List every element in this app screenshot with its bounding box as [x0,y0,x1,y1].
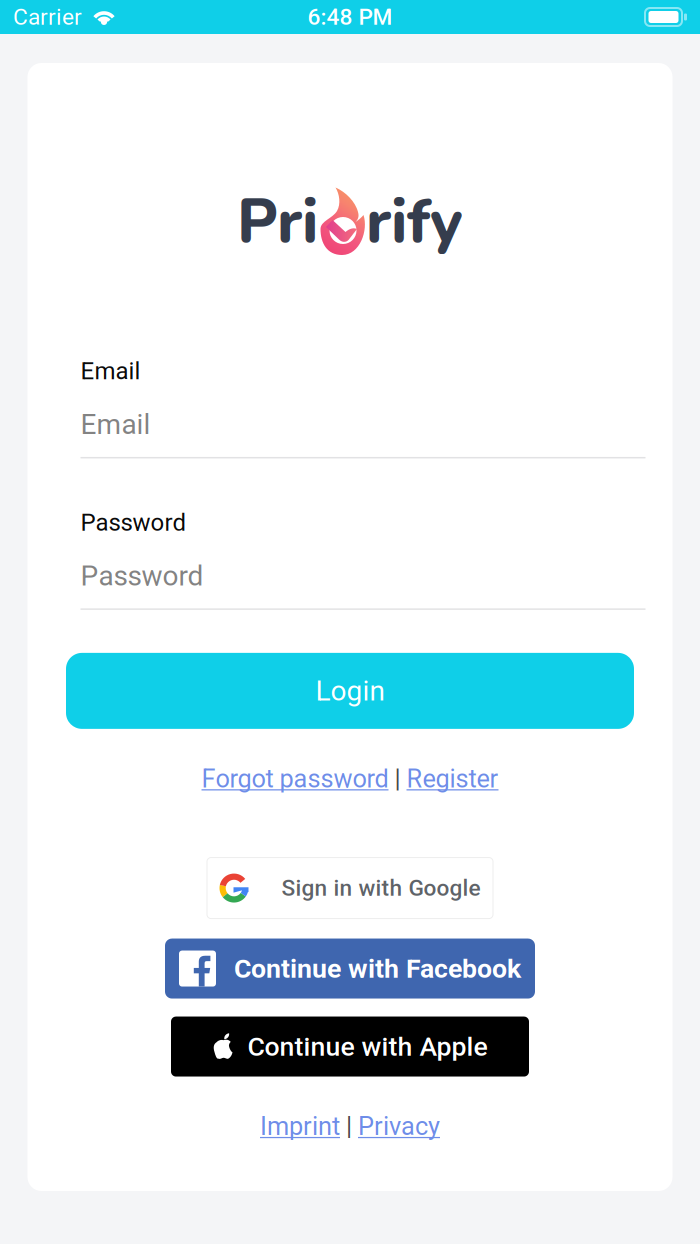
staticText: rify [366,180,463,264]
staticText: Continue with Apple [247,1031,487,1062]
staticText: Email [80,357,140,385]
staticText: Register [406,764,498,794]
staticText: Forgot password [201,764,388,794]
staticText: | [388,764,406,794]
staticText: Password [80,508,186,536]
staticText: Pri [237,180,318,264]
button[interactable]: Login [66,653,634,729]
staticText: Password [80,560,203,592]
button[interactable]: Privacy [358,1112,440,1141]
staticText: | [340,1112,358,1141]
staticText: Carrier [13,4,82,30]
button[interactable]: Sign in with Google [207,858,493,919]
staticText: Continue with Facebook [234,953,521,984]
staticText: Sign in with Google [281,875,480,901]
button[interactable]: Register [406,764,498,794]
staticText: Imprint [260,1112,340,1141]
staticText: Email [80,408,150,441]
staticText: Privacy [358,1112,440,1141]
button[interactable]: Continue with Apple [171,1017,529,1077]
button[interactable]: Continue with Facebook [165,939,535,999]
button[interactable]: Forgot password [201,764,388,794]
staticText: Login [315,674,384,707]
button[interactable]: Imprint [260,1112,340,1141]
staticText: 6:48 PM [307,4,392,30]
